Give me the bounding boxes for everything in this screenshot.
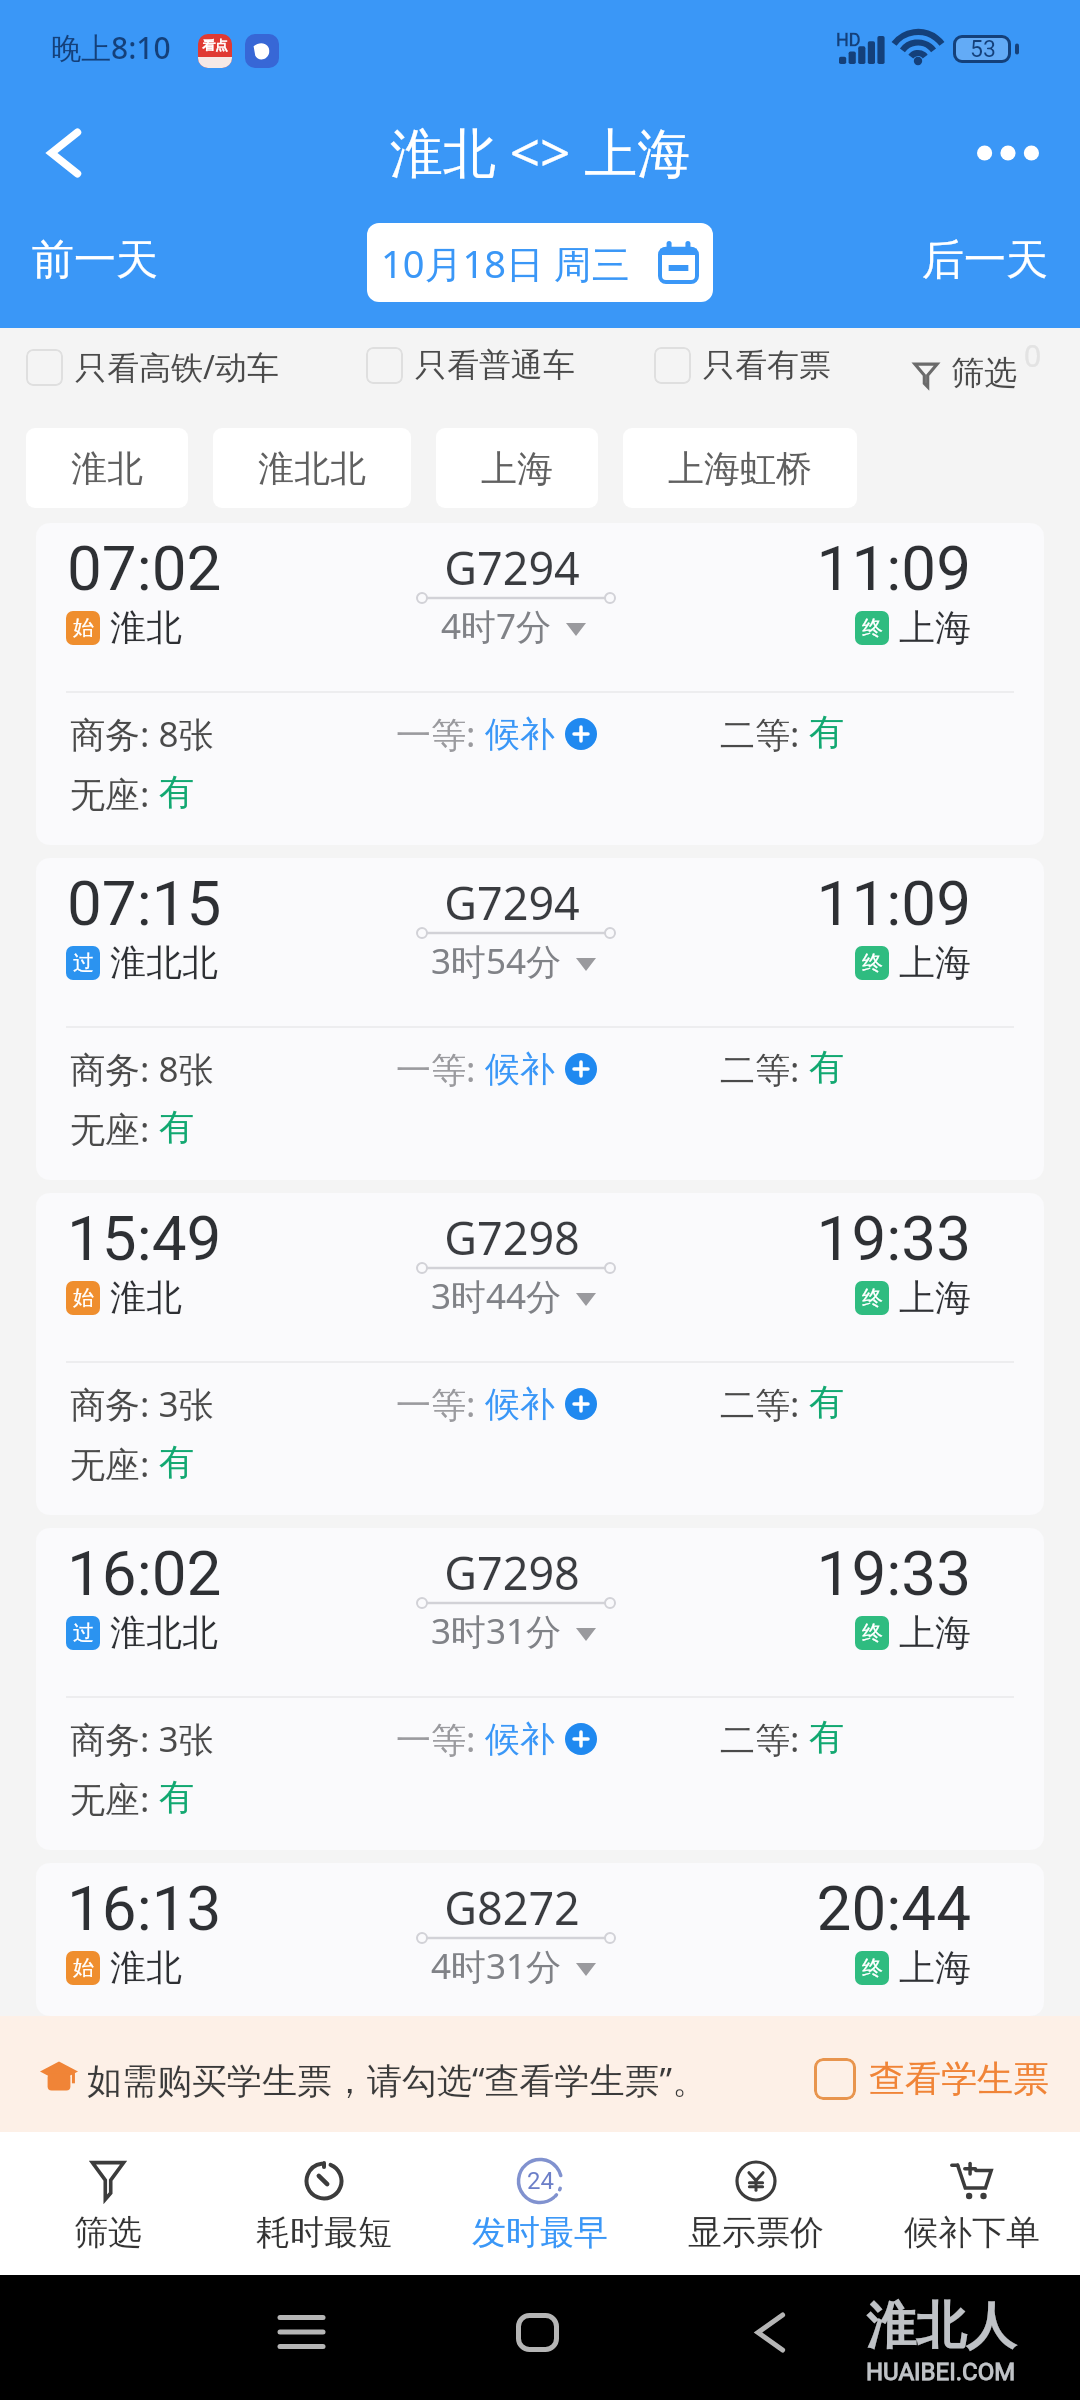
staticText: 只看高铁/动车: [75, 345, 279, 389]
button[interactable]: 16:13: [36, 1863, 1044, 2016]
staticText: 上海: [899, 1275, 971, 1320]
staticText: 上海: [899, 940, 971, 985]
button[interactable]: 前一天: [26, 228, 164, 293]
button[interactable]: Home: [497, 2292, 577, 2372]
staticText: 只看有票: [703, 345, 831, 385]
staticText: 终: [862, 1285, 883, 1311]
staticText: 始: [73, 1955, 94, 1981]
button[interactable]: 上海虹桥: [623, 428, 857, 508]
staticText: 显示票价: [688, 2211, 824, 2254]
button[interactable]: 查看学生票: [808, 2050, 1055, 2107]
button[interactable]: 淮北北: [213, 428, 411, 508]
staticText: 前一天: [32, 234, 158, 287]
button[interactable]: 筛选: [910, 348, 1021, 398]
button[interactable]: 耗时最短: [216, 2132, 432, 2275]
staticText: 一等:: [396, 1715, 485, 1763]
button[interactable]: 候补下单: [864, 2132, 1080, 2275]
staticText: HUAIBEI.COM: [866, 2358, 1016, 2386]
staticText: 3时54分: [431, 937, 562, 985]
staticText: 19:33: [736, 1202, 971, 1275]
staticText: 上海: [481, 446, 553, 491]
button[interactable]: 筛选: [0, 2132, 216, 2275]
staticText: 4时31分: [431, 1942, 562, 1990]
staticText: 发时最早: [472, 2211, 608, 2254]
staticText: 二等:: [720, 1380, 809, 1428]
staticText: 商务: 3张: [70, 1715, 214, 1763]
staticText: 筛选: [74, 2211, 142, 2254]
staticText: 10月18日 周三: [381, 237, 630, 289]
staticText: G7298: [392, 1207, 632, 1268]
staticText: 始: [73, 1285, 94, 1311]
button[interactable]: 07:15: [36, 858, 1044, 1180]
staticText: 淮北: [71, 446, 143, 491]
staticText: 无座:: [70, 1105, 159, 1153]
staticText: 07:15: [67, 867, 222, 940]
staticText: 耗时最短: [256, 2211, 392, 2254]
staticText: 商务: 3张: [70, 1380, 214, 1428]
staticText: 4时7分: [441, 602, 552, 650]
button[interactable]: 淮北: [26, 428, 188, 508]
staticText: 有: [159, 1105, 194, 1149]
staticText: 候补: [485, 1382, 555, 1426]
staticText: 3时31分: [431, 1607, 562, 1655]
staticText: 只看普通车: [415, 345, 575, 385]
staticText: 终: [862, 1955, 883, 1981]
button[interactable]: Recent apps: [261, 2292, 341, 2372]
staticText: HD: [836, 29, 861, 50]
staticText: 无座:: [70, 1775, 159, 1823]
staticText: 淮北北: [110, 940, 218, 985]
button[interactable]: Back: [730, 2292, 810, 2372]
staticText: 候补: [485, 712, 555, 756]
button[interactable]: 上海: [436, 428, 598, 508]
staticText: 16:13: [67, 1872, 222, 1945]
staticText: 候补: [485, 1717, 555, 1761]
staticText: 一等:: [396, 710, 485, 758]
staticText: 淮北: [110, 605, 182, 650]
staticText: G7294: [392, 537, 632, 598]
staticText: 淮北人: [866, 2295, 1016, 2358]
staticText: 19:33: [736, 1537, 971, 1610]
staticText: 候补: [485, 1047, 555, 1091]
staticText: G8272: [392, 1877, 632, 1938]
staticText: 一等:: [396, 1380, 485, 1428]
staticText: 16:02: [67, 1537, 222, 1610]
staticText: 有: [809, 710, 844, 754]
staticText: 候补下单: [904, 2211, 1040, 2254]
staticText: 有: [159, 1775, 194, 1819]
staticText: 无座:: [70, 770, 159, 818]
staticText: 二等:: [720, 710, 809, 758]
staticText: 淮北 <> 上海: [390, 115, 691, 187]
staticText: 24: [527, 2167, 554, 2195]
button[interactable]: 只看高铁/动车: [26, 341, 279, 393]
staticText: 筛选: [951, 352, 1017, 394]
staticText: 始: [73, 615, 94, 641]
button[interactable]: 只看普通车: [366, 341, 575, 389]
button[interactable]: 显示票价: [648, 2132, 864, 2275]
staticText: 终: [862, 615, 883, 641]
staticText: 上海: [899, 1610, 971, 1655]
staticText: 53: [970, 36, 996, 63]
button[interactable]: 只看有票: [654, 341, 831, 389]
button[interactable]: 后一天: [916, 228, 1054, 293]
staticText: 淮北: [110, 1945, 182, 1990]
button[interactable]: 15:49: [36, 1193, 1044, 1515]
staticText: 11:09: [736, 867, 971, 940]
button[interactable]: 07:02: [36, 523, 1044, 845]
staticText: 有: [159, 770, 194, 814]
staticText: 3时44分: [431, 1272, 562, 1320]
button[interactable]: More options: [963, 108, 1053, 198]
staticText: 上海虹桥: [668, 446, 812, 491]
staticText: 过: [73, 1620, 94, 1646]
staticText: G7294: [392, 872, 632, 933]
staticText: 上海: [899, 1945, 971, 1990]
button[interactable]: 16:02: [36, 1528, 1044, 1850]
button[interactable]: 24: [432, 2132, 648, 2275]
button[interactable]: 10月18日 周三: [367, 223, 713, 302]
staticText: 如需购买学生票，请勾选“查看学生票”。: [87, 2056, 708, 2104]
staticText: 商务: 8张: [70, 1045, 214, 1093]
staticText: 淮北北: [258, 446, 366, 491]
staticText: 终: [862, 950, 883, 976]
staticText: 看点: [202, 37, 228, 53]
button[interactable]: Back: [24, 113, 104, 193]
staticText: G7298: [392, 1542, 632, 1603]
